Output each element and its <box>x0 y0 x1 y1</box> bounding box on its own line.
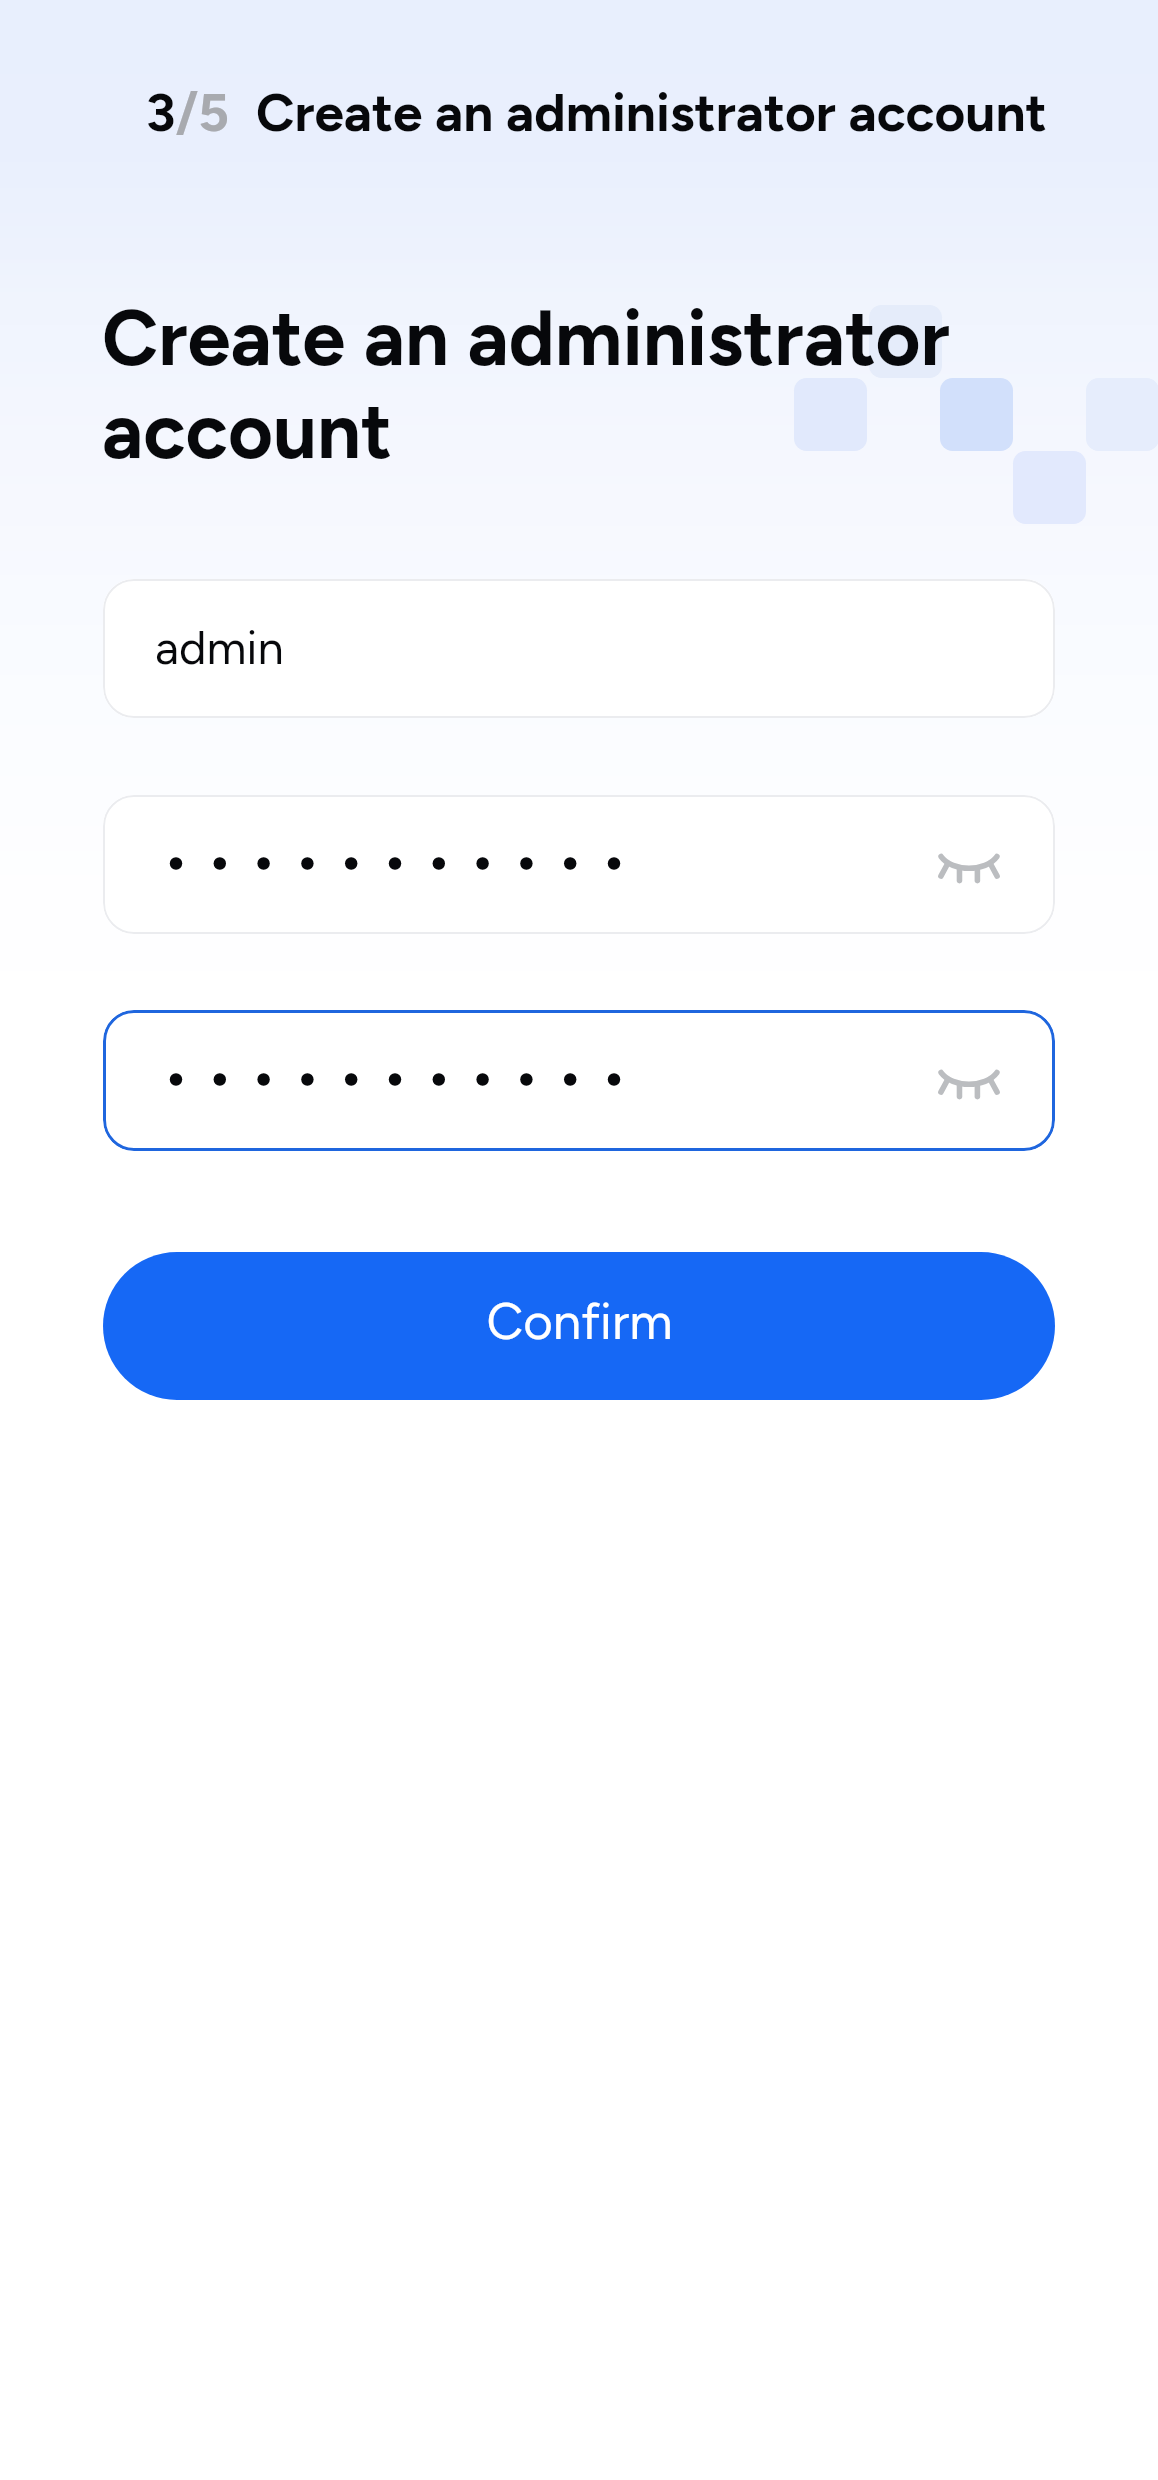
staticText: admin <box>155 619 284 675</box>
button[interactable]: Show password <box>925 826 1013 914</box>
button[interactable]: Confirm <box>103 1252 1055 1400</box>
staticText: 3/5 <box>146 81 230 145</box>
button[interactable]: Show password <box>103 795 1055 934</box>
staticText: Confirm <box>486 1291 673 1352</box>
staticText: Create an administrator account <box>256 81 1047 145</box>
staticText: Create an administrator account <box>102 291 950 477</box>
button[interactable]: Show password <box>925 1042 1013 1130</box>
button[interactable]: admin <box>103 579 1055 718</box>
button[interactable]: Show password <box>103 1010 1055 1151</box>
